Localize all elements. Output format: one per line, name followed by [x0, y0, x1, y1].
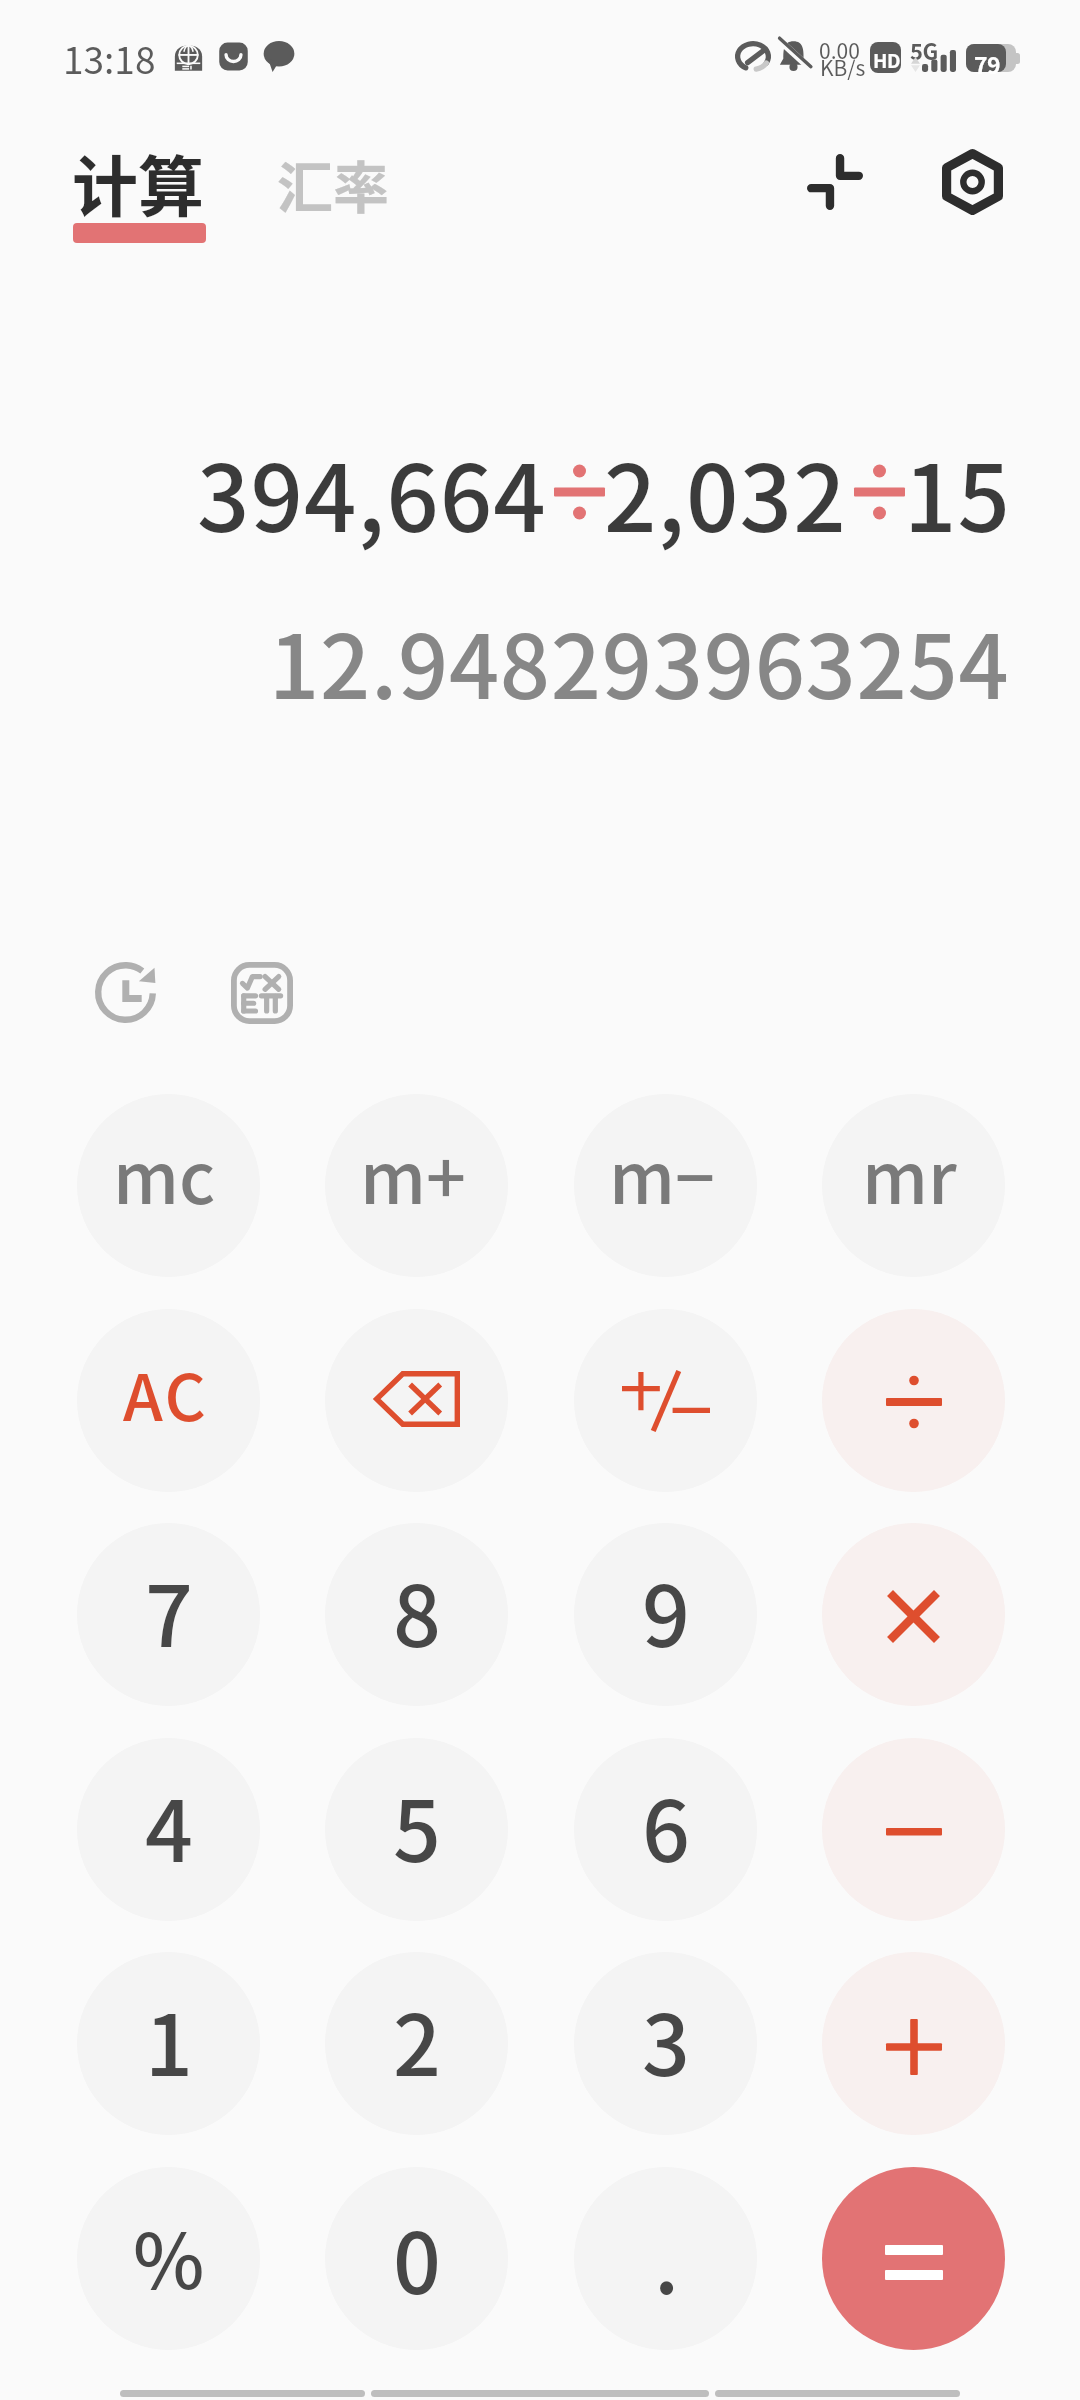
other: Delete	[374, 1371, 460, 1427]
staticText: 汇率	[277, 143, 389, 224]
staticText: 15	[904, 425, 1012, 558]
other: Multiply	[889, 1592, 938, 1641]
staticText: 3	[642, 1979, 690, 2101]
staticText: mc	[113, 1123, 216, 1224]
staticText: 0	[393, 2197, 441, 2319]
button[interactable]: Home	[371, 2390, 709, 2397]
staticText: 2,032	[604, 425, 847, 558]
staticText: 13:18	[63, 31, 156, 85]
staticText: KB/s	[820, 52, 866, 82]
button[interactable]: 7	[77, 1523, 260, 1706]
button[interactable]: AC	[77, 1309, 260, 1492]
button[interactable]: Scientific functions	[214, 945, 309, 1040]
staticText: 0.00	[819, 35, 860, 65]
staticText: 5	[393, 1765, 441, 1887]
button[interactable]: 6	[574, 1738, 757, 1921]
staticText: 9	[642, 1550, 690, 1672]
button[interactable]: m−	[574, 1094, 757, 1277]
staticText: mr	[862, 1123, 957, 1224]
button[interactable]: 2	[325, 1952, 508, 2135]
staticText: m+	[360, 1123, 466, 1224]
button[interactable]: Collapse keypad	[787, 134, 883, 230]
button[interactable]: 1	[77, 1952, 260, 2135]
button[interactable]: 8	[325, 1523, 508, 1706]
staticText: 8	[393, 1550, 441, 1672]
button[interactable]: Plus minus	[574, 1309, 757, 1492]
button[interactable]: m+	[325, 1094, 508, 1277]
button[interactable]: Multiply	[822, 1523, 1005, 1706]
button[interactable]: 0	[325, 2167, 508, 2350]
staticText: 12.948293963254	[269, 597, 1010, 724]
staticText: AC	[123, 1347, 209, 1440]
staticText: HD	[873, 46, 900, 73]
staticText: 7	[145, 1550, 193, 1672]
staticText: 5G	[910, 34, 938, 66]
button[interactable]: Back	[120, 2390, 365, 2397]
other: Plus minus	[622, 1371, 710, 1431]
button[interactable]: 5	[325, 1738, 508, 1921]
button[interactable]: 计算	[59, 118, 220, 258]
button[interactable]: mr	[822, 1094, 1005, 1277]
button[interactable]: Delete	[325, 1309, 508, 1492]
button[interactable]: 4	[77, 1738, 260, 1921]
staticText: %	[133, 2201, 205, 2311]
button[interactable]: Divide	[822, 1309, 1005, 1492]
staticText: .	[654, 2197, 680, 2319]
button[interactable]: History	[78, 945, 173, 1040]
button[interactable]: Recents	[715, 2390, 960, 2397]
button[interactable]: 汇率	[264, 127, 398, 227]
staticText: 2	[393, 1979, 441, 2101]
button[interactable]: Plus	[822, 1952, 1005, 2135]
staticText: 6	[642, 1765, 690, 1887]
other: Equals	[885, 2245, 943, 2280]
other: Minus	[886, 1828, 942, 1836]
button[interactable]: Minus	[822, 1738, 1005, 1921]
button[interactable]: 3	[574, 1952, 757, 2135]
button[interactable]: 9	[574, 1523, 757, 1706]
staticText: m−	[609, 1123, 715, 1224]
staticText: 79	[974, 47, 1001, 80]
staticText: 4	[145, 1765, 193, 1887]
button[interactable]: Equals	[822, 2167, 1005, 2350]
staticText: 394,664	[197, 425, 547, 558]
button[interactable]: %	[77, 2167, 260, 2350]
other: Divide	[886, 1376, 942, 1428]
staticText: 1	[145, 1979, 193, 2101]
other: Plus	[886, 2019, 942, 2075]
button[interactable]: mc	[77, 1094, 260, 1277]
button[interactable]: Settings	[924, 134, 1020, 230]
button[interactable]: .	[574, 2167, 757, 2350]
staticText: 计算	[72, 134, 204, 230]
